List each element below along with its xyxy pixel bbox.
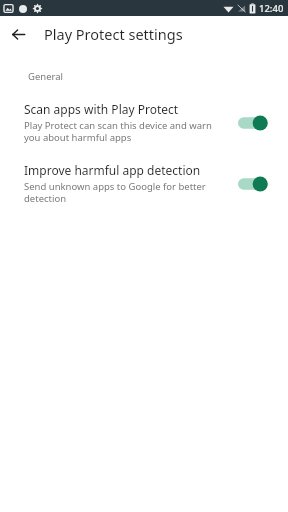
- staticText: Improve harmful app detection: [24, 162, 201, 178]
- button[interactable]: Toggle setting: [238, 112, 272, 134]
- staticText: 12:40: [259, 2, 284, 15]
- button[interactable]: Improve harmful app detection: [0, 160, 288, 207]
- button[interactable]: Navigate up: [6, 22, 30, 46]
- staticText: Send unknown apps to Google for better d…: [24, 180, 226, 205]
- button[interactable]: Scan apps with Play Protect: [0, 99, 288, 146]
- staticText: Play Protect can scan this device and wa…: [24, 119, 226, 144]
- staticText: Scan apps with Play Protect: [24, 101, 179, 117]
- button[interactable]: Toggle setting: [238, 173, 272, 195]
- staticText: General: [28, 70, 64, 83]
- staticText: Play Protect settings: [44, 24, 183, 44]
